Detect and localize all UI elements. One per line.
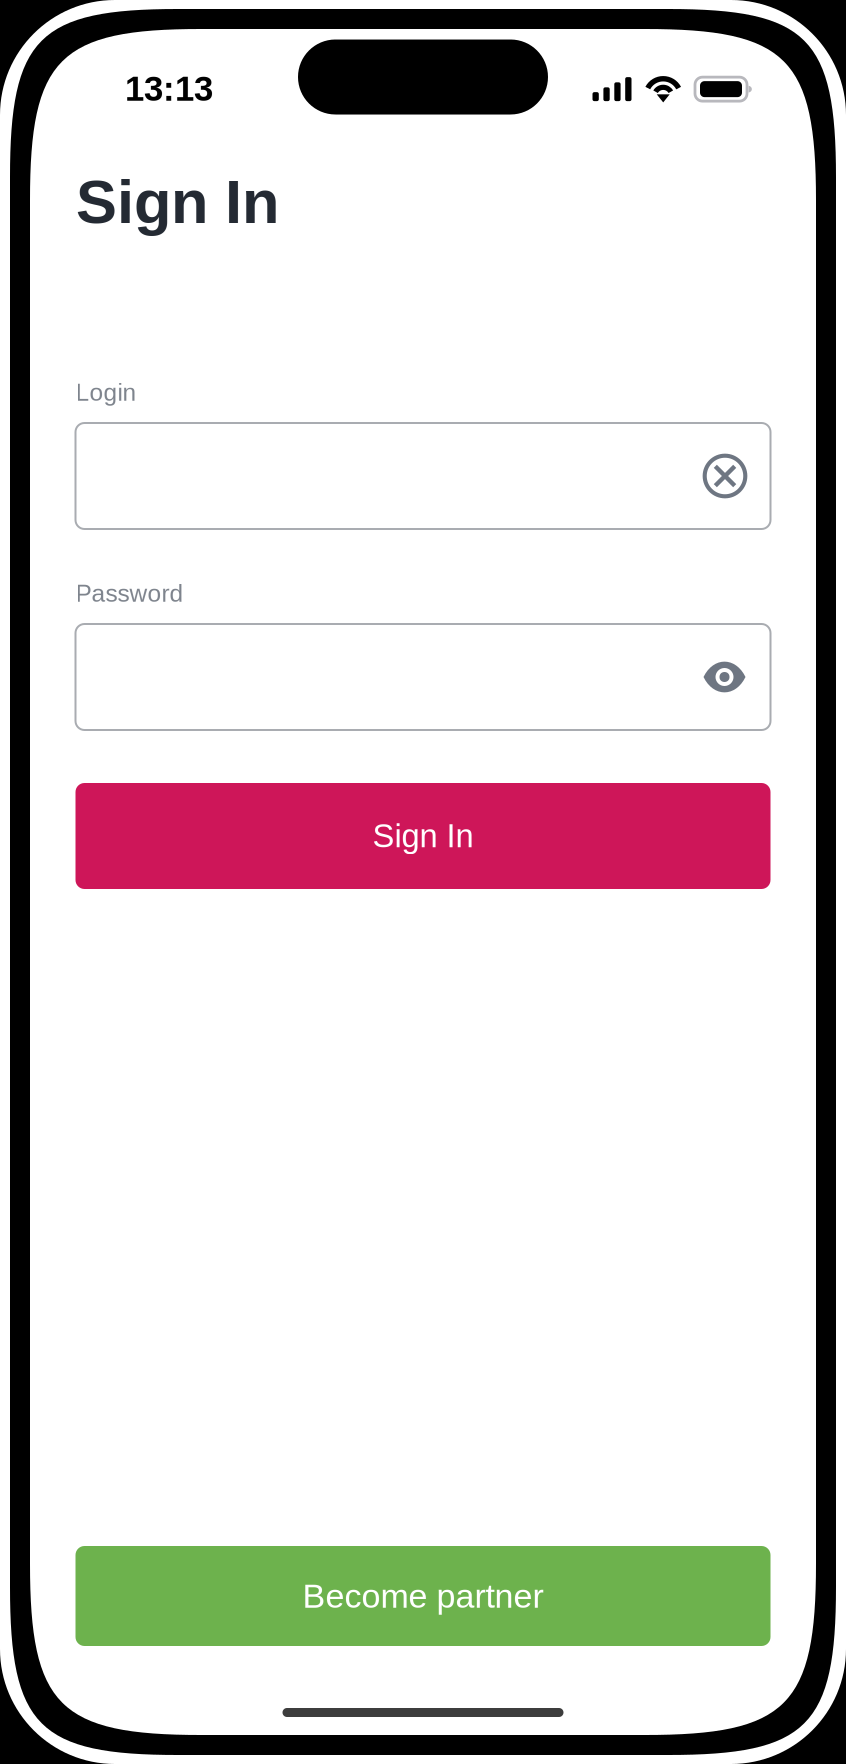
button[interactable]: Clear login xyxy=(702,453,770,498)
staticText: 13:13 xyxy=(125,69,213,108)
staticText: Sign In xyxy=(76,167,279,236)
staticText: Login xyxy=(75,379,136,406)
button[interactable]: Become partner xyxy=(75,1546,770,1646)
staticText: Sign In xyxy=(372,818,473,854)
staticText: Become partner xyxy=(302,1577,543,1615)
staticText: Password xyxy=(75,580,183,607)
button[interactable]: Show password xyxy=(703,662,770,692)
button[interactable]: Sign In xyxy=(75,783,770,889)
